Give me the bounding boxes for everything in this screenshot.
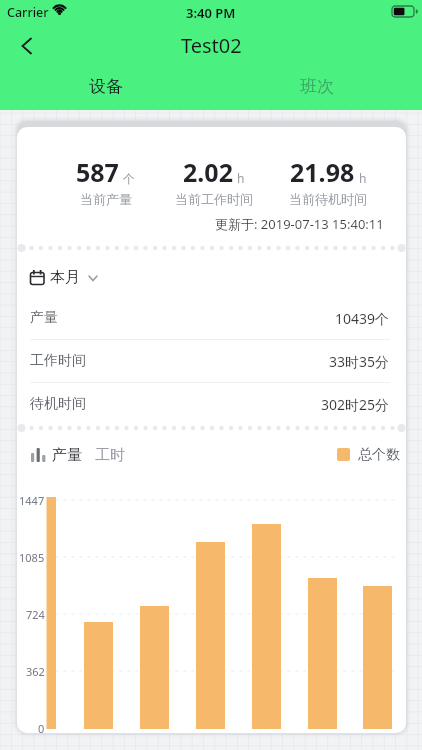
- staticText: 724: [26, 607, 45, 622]
- staticText: 0: [38, 721, 45, 736]
- button[interactable]: 本月: [17, 260, 406, 296]
- staticText: 302时25分: [321, 395, 390, 414]
- staticText: 更新于: 2019-07-13 15:40:11: [215, 215, 384, 233]
- button[interactable]: 班次: [211, 66, 422, 106]
- button[interactable]: 工作时间: [17, 340, 406, 382]
- staticText: 本月: [50, 268, 80, 287]
- staticText: 587: [76, 155, 119, 189]
- staticText: 个: [123, 171, 135, 186]
- button[interactable]: 产量: [52, 438, 82, 472]
- staticText: 产量: [30, 309, 58, 327]
- button[interactable]: 待机时间: [17, 383, 406, 425]
- staticText: 21.98: [290, 155, 355, 189]
- staticText: 总个数: [358, 446, 400, 464]
- staticText: h: [359, 170, 367, 186]
- button[interactable]: 工时: [95, 438, 125, 472]
- staticText: 当前产量: [80, 191, 132, 207]
- staticText: 当前待机时间: [289, 191, 367, 207]
- staticText: 工时: [95, 446, 125, 465]
- staticText: 待机时间: [30, 395, 86, 413]
- staticText: Carrier: [7, 4, 49, 21]
- staticText: 1085: [19, 550, 45, 565]
- staticText: 3:40 PM: [186, 4, 236, 22]
- button[interactable]: [10, 32, 44, 60]
- staticText: 班次: [300, 76, 334, 97]
- staticText: 362: [26, 664, 45, 679]
- staticText: 33时35分: [329, 352, 390, 371]
- staticText: Test02: [181, 32, 242, 59]
- staticText: 1447: [19, 493, 45, 508]
- staticText: 10439个: [335, 309, 390, 328]
- staticText: 当前工作时间: [175, 191, 253, 207]
- staticText: 产量: [52, 446, 82, 465]
- staticText: 工作时间: [30, 352, 86, 370]
- staticText: h: [237, 170, 245, 186]
- button[interactable]: 设备: [0, 66, 211, 106]
- staticText: 设备: [89, 76, 123, 97]
- staticText: 2.02: [183, 155, 233, 189]
- button[interactable]: 产量: [17, 297, 406, 339]
